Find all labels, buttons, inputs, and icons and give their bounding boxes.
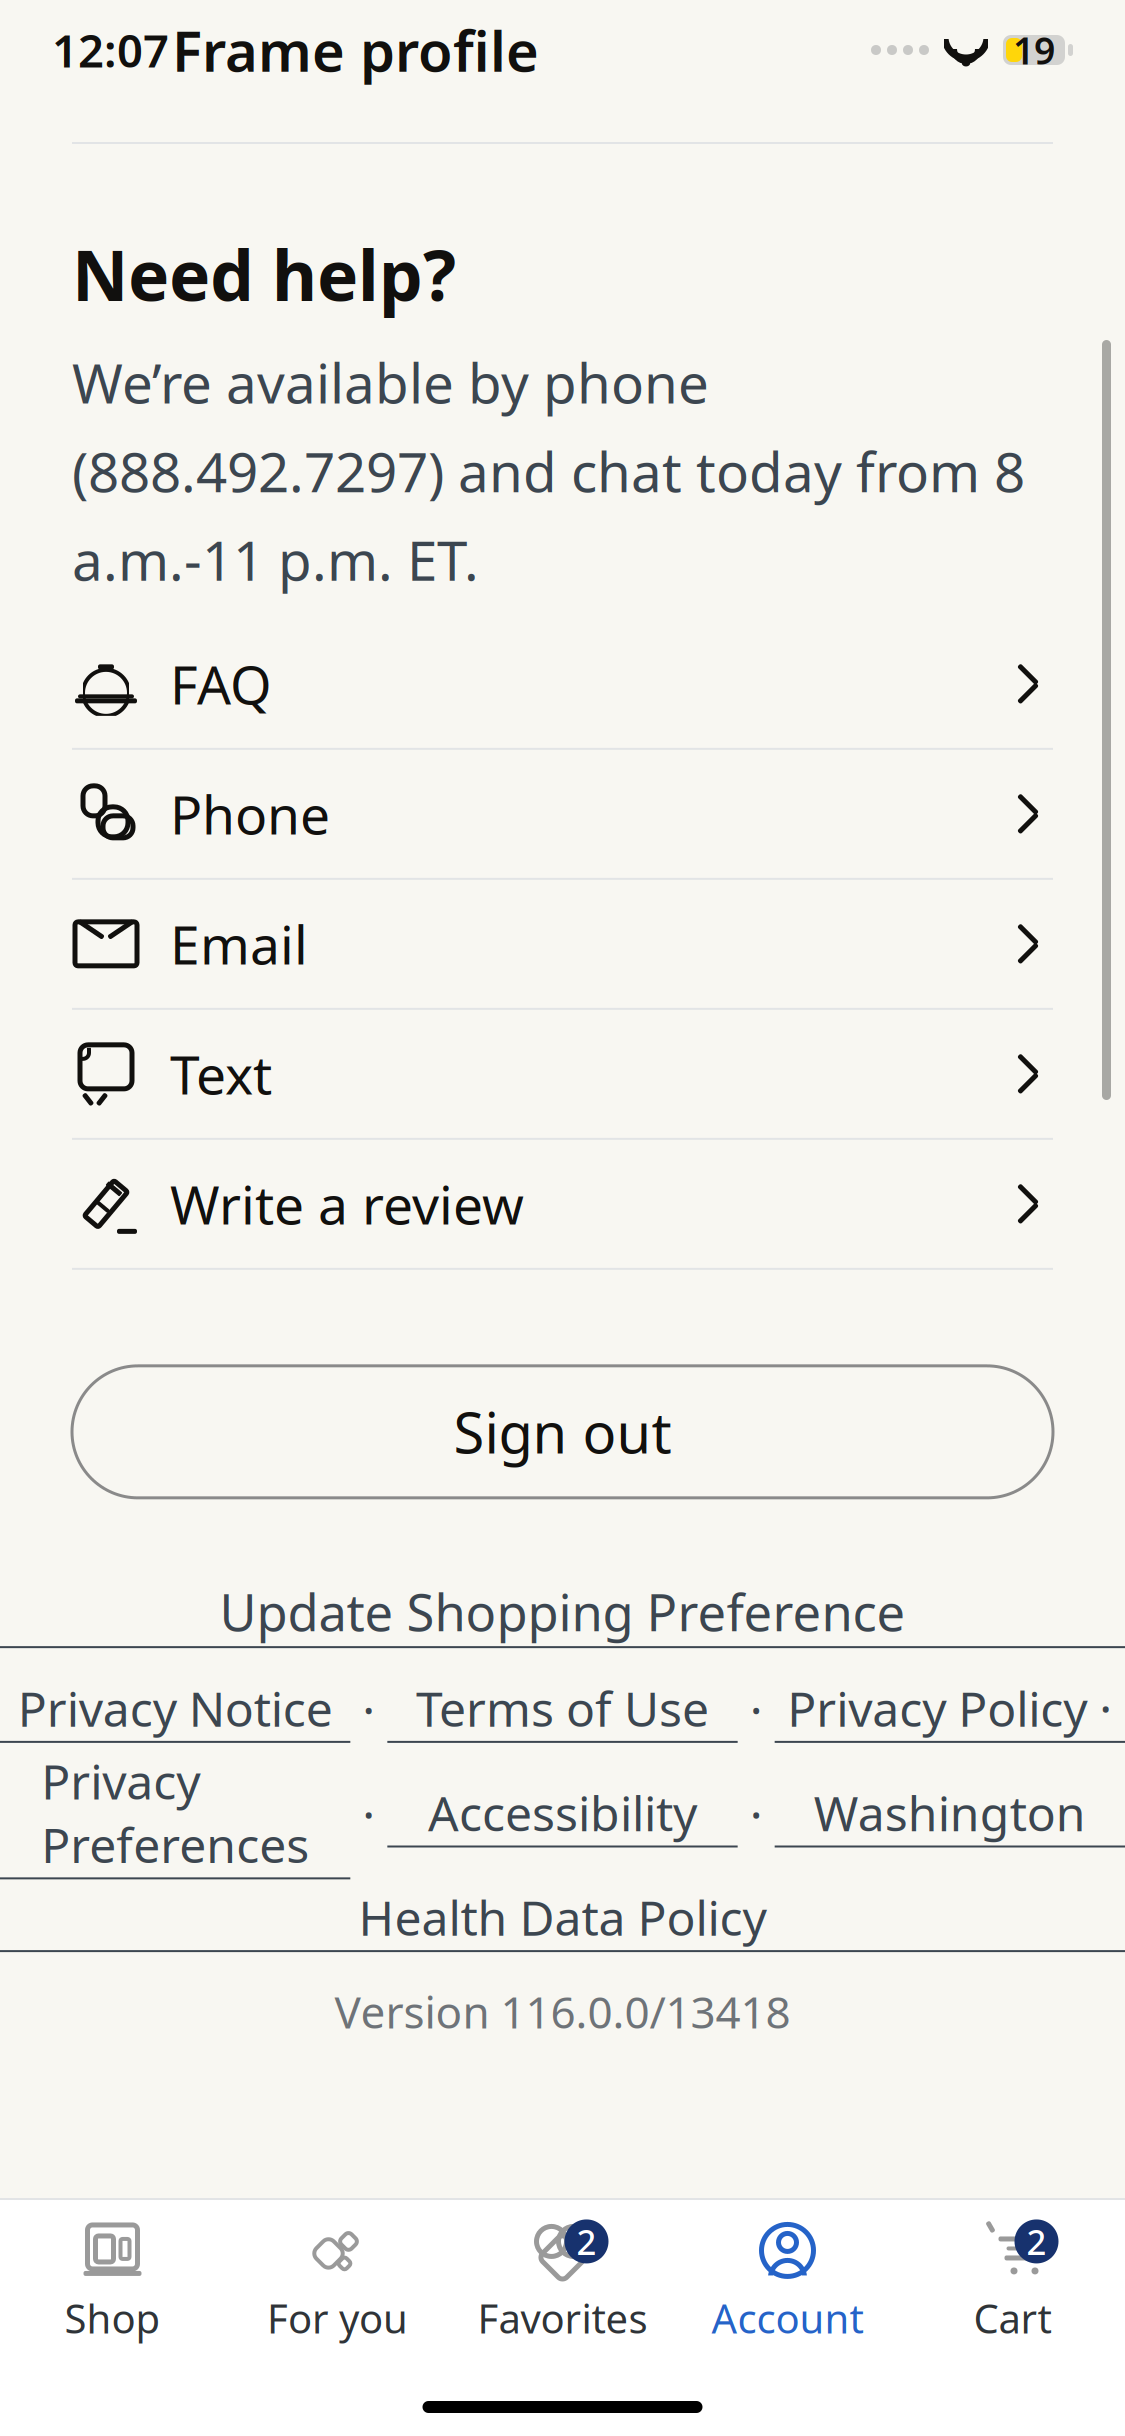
button[interactable]: Health Data Policy <box>0 1885 1125 1952</box>
staticText: Phone <box>170 778 330 849</box>
button[interactable]: Sign out <box>72 1366 1053 1498</box>
staticText: FAQ <box>170 648 272 719</box>
staticText: Privacy Notice <box>18 1676 333 1740</box>
button[interactable]: For you <box>225 2205 450 2344</box>
button[interactable]: Privacy Preferences <box>0 1749 350 1879</box>
staticText: Accessibility <box>428 1781 697 1844</box>
staticText: Privacy Policy · <box>787 1676 1112 1740</box>
staticText: Update Shopping Preference <box>219 1578 905 1645</box>
button[interactable]: Privacy Notice <box>0 1676 350 1743</box>
staticText: Favorites <box>477 2291 647 2344</box>
staticText: · <box>350 1678 387 1741</box>
button[interactable]: Write a review <box>0 1140 1125 1270</box>
staticText: Washington <box>814 1781 1086 1844</box>
button[interactable]: Account <box>675 2205 900 2344</box>
staticText: · <box>738 1782 775 1846</box>
staticText: Version 116.0.0/13418 <box>334 1982 790 2040</box>
staticText: Terms of Use <box>416 1676 709 1740</box>
button[interactable]: Terms of Use <box>387 1676 738 1743</box>
staticText: · <box>738 1678 775 1741</box>
staticText: 2 <box>1026 2218 1046 2264</box>
button[interactable]: 2 <box>900 2205 1125 2344</box>
staticText: We’re available by phone (888.492.7297) … <box>72 346 1025 596</box>
staticText: Sign out <box>453 1395 671 1469</box>
button[interactable]: FAQ <box>0 620 1125 750</box>
button[interactable]: Shop <box>0 2205 225 2344</box>
button[interactable]: Update Shopping Preference <box>0 1578 1125 1648</box>
staticText: For you <box>267 2291 408 2344</box>
staticText: Cart <box>973 2291 1051 2344</box>
staticText: 2 <box>576 2218 596 2264</box>
staticText: Text <box>170 1038 272 1109</box>
staticText: · <box>350 1782 387 1846</box>
button[interactable]: 2 <box>450 2205 675 2344</box>
staticText: Write a review <box>170 1168 524 1239</box>
button[interactable]: Accessibility <box>387 1781 738 1847</box>
staticText: 19 <box>1013 25 1055 75</box>
staticText: Privacy Preferences <box>41 1749 309 1876</box>
button[interactable]: Washington <box>775 1781 1125 1847</box>
staticText: Frame profile <box>172 13 539 87</box>
button[interactable]: Text <box>0 1010 1125 1140</box>
button[interactable]: Privacy Policy · <box>775 1676 1125 1743</box>
button[interactable]: Email <box>0 880 1125 1010</box>
button[interactable]: Phone <box>0 750 1125 880</box>
staticText: Need help? <box>72 228 456 320</box>
staticText: Health Data Policy <box>358 1885 766 1949</box>
staticText: Email <box>170 908 308 979</box>
staticText: 12:07 <box>52 20 169 80</box>
staticText: Account <box>711 2291 863 2344</box>
staticText: Shop <box>64 2291 160 2344</box>
